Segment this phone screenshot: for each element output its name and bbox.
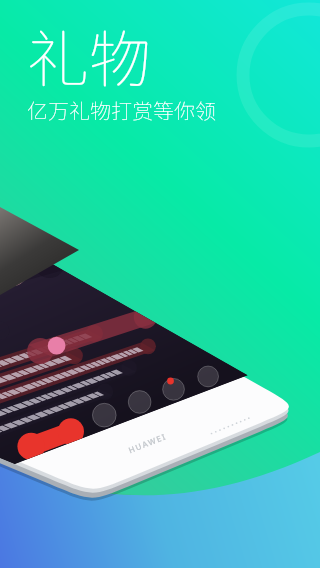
button[interactable] (0, 0, 320, 568)
